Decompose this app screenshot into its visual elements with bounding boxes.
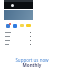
button[interactable]: Profile bbox=[11, 4, 14, 7]
button[interactable] bbox=[4, 30, 33, 34]
button[interactable]: Shortcut 1 bbox=[6, 24, 10, 28]
button[interactable]: Support us now bbox=[0, 57, 64, 63]
button[interactable]: Shortcut 4 bbox=[26, 24, 31, 27]
button[interactable]: Shortcut 3 bbox=[20, 24, 24, 27]
button[interactable]: Shortcut 2 bbox=[13, 24, 17, 28]
button[interactable] bbox=[4, 42, 33, 46]
staticText: Monthly bbox=[0, 62, 64, 68]
button[interactable] bbox=[4, 38, 33, 42]
button[interactable] bbox=[4, 34, 33, 38]
